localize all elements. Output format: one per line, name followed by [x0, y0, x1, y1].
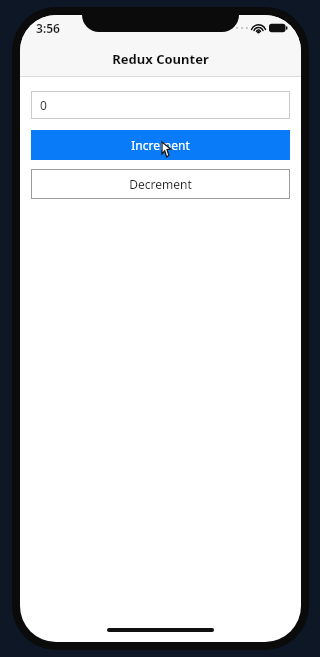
- staticText: Increment: [131, 137, 190, 153]
- staticText: 0: [40, 97, 47, 113]
- button[interactable]: Decrement: [31, 169, 290, 199]
- button[interactable]: Counter value: [31, 91, 290, 119]
- button[interactable]: Increment: [31, 130, 290, 160]
- staticText: Decrement: [129, 176, 192, 192]
- staticText: 3:56: [36, 20, 60, 36]
- staticText: Redux Counter: [112, 50, 209, 68]
